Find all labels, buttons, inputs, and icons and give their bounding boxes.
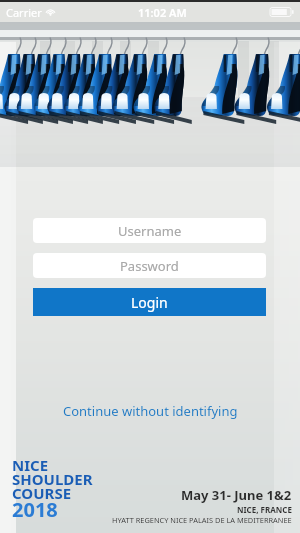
staticText: Password — [120, 257, 179, 275]
staticText: NICE, FRANCE — [237, 504, 292, 515]
button[interactable]: Username — [33, 218, 266, 243]
staticText: Username — [118, 222, 182, 240]
staticText: 11:02 AM — [138, 5, 187, 20]
staticText: NICE — [12, 455, 49, 475]
button[interactable]: Continue without identifying — [0, 402, 300, 420]
staticText: Continue without identifying — [63, 402, 238, 420]
button[interactable]: Password — [33, 253, 266, 278]
staticText: COURSE — [12, 483, 72, 503]
staticText: Carrier — [6, 5, 42, 20]
staticText: May 31- June 1&2 — [181, 486, 292, 504]
button[interactable]: Login — [33, 288, 266, 316]
staticText: 2018 — [12, 496, 58, 523]
staticText: HYATT REGENCY NICE PALAIS DE LA MEDITERR… — [112, 515, 292, 525]
staticText: SHOULDER — [12, 469, 93, 489]
staticText: Login — [131, 293, 168, 312]
